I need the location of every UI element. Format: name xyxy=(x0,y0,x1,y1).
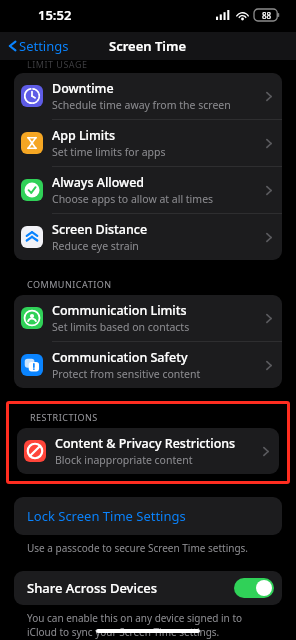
button[interactable]: Share Across Devices toggle xyxy=(234,578,274,598)
staticText: Communication Safety xyxy=(52,349,188,366)
button[interactable]: Communication Safety xyxy=(14,342,282,388)
staticText: Screen Distance xyxy=(52,221,148,238)
staticText: You can enable this on any device signed… xyxy=(27,611,269,639)
staticText: Set time limits for apps xyxy=(52,145,166,159)
button[interactable]: Content & Privacy Restrictions xyxy=(17,428,279,474)
staticText: Block inappropriate content xyxy=(55,453,193,467)
staticText: Lock Screen Time Settings xyxy=(27,507,186,525)
button[interactable]: Lock Screen Time Settings xyxy=(14,497,282,535)
staticText: Protect from sensitive content xyxy=(52,367,201,381)
staticText: LIMIT USAGE xyxy=(27,58,88,69)
staticText: Content & Privacy Restrictions xyxy=(55,435,236,452)
button[interactable]: App Limits xyxy=(14,120,282,166)
staticText: Settings xyxy=(19,37,69,55)
button[interactable]: Share Across Devices xyxy=(14,571,282,605)
staticText: App Limits xyxy=(52,127,116,144)
staticText: Use a passcode to secure Screen Time set… xyxy=(27,541,249,555)
staticText: Share Across Devices xyxy=(27,579,234,597)
staticText: 88 xyxy=(262,10,272,21)
staticText: Schedule time away from the screen xyxy=(52,98,231,112)
button[interactable]: Always Allowed xyxy=(14,167,282,213)
staticText: Reduce eye strain xyxy=(52,239,139,253)
button[interactable]: Downtime xyxy=(14,73,282,119)
staticText: Choose apps to allow at all times xyxy=(52,192,214,206)
staticText: Always Allowed xyxy=(52,174,145,191)
button[interactable]: Communication Limits xyxy=(14,295,282,341)
staticText: RESTRICTIONS xyxy=(30,411,98,423)
staticText: COMMUNICATION xyxy=(27,278,112,290)
staticText: Communication Limits xyxy=(52,302,187,319)
staticText: 15:52 xyxy=(38,6,72,24)
staticText: Screen Time xyxy=(109,37,187,55)
staticText: Set limits based on contacts xyxy=(52,320,190,334)
button[interactable]: Screen Distance xyxy=(14,214,282,260)
button[interactable]: Settings xyxy=(0,33,77,59)
staticText: Downtime xyxy=(52,80,114,97)
